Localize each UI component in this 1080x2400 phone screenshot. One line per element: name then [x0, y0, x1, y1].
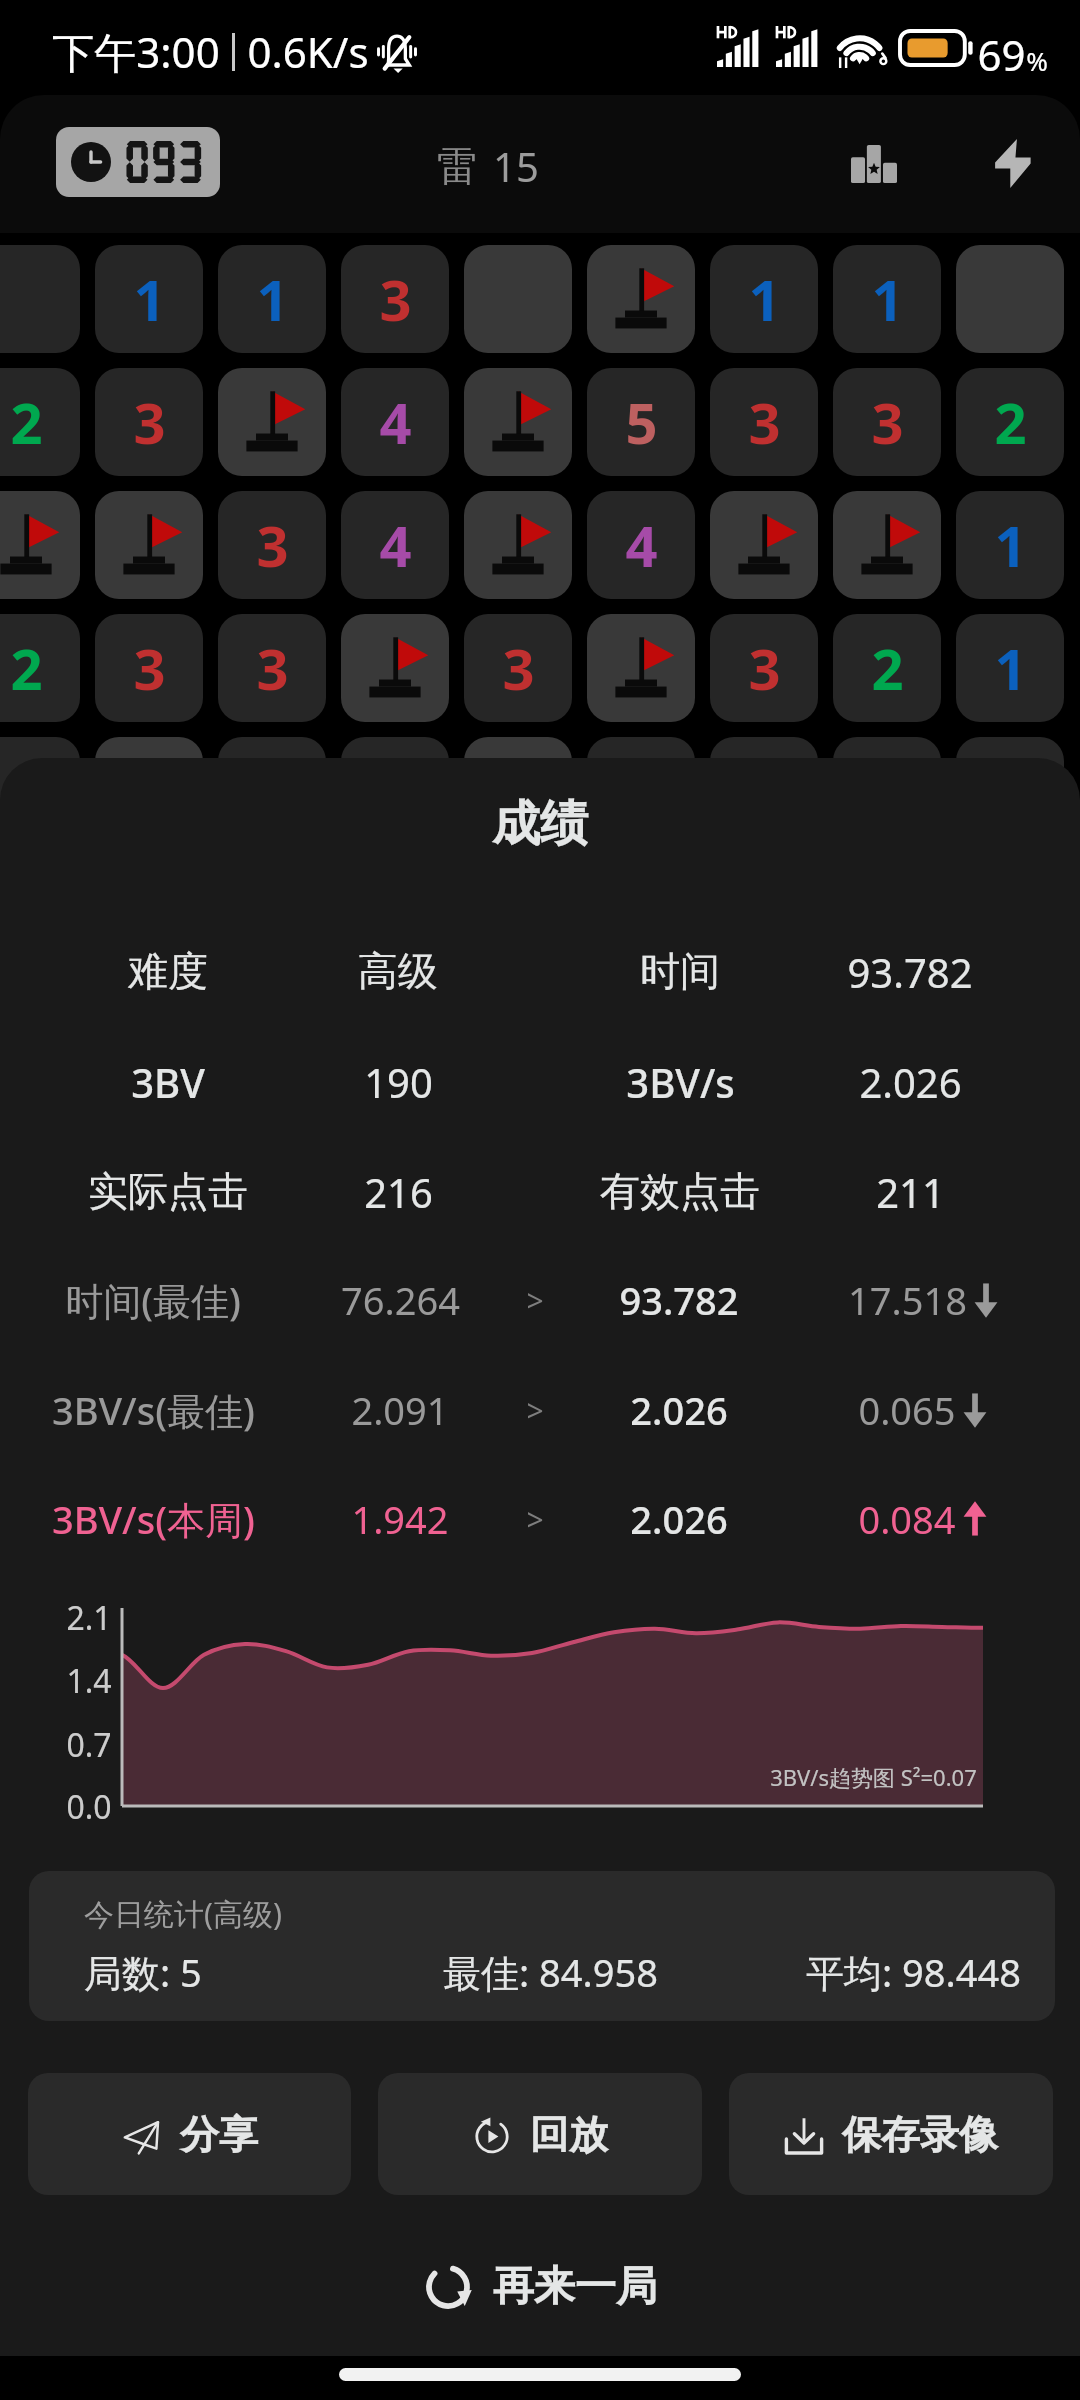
- staticText: 3: [133, 630, 166, 706]
- button[interactable]: Cell: [464, 491, 572, 599]
- staticText: 3: [748, 384, 781, 460]
- button[interactable]: 再来一局: [393, 2247, 687, 2327]
- button[interactable]: Cell: [464, 614, 572, 722]
- staticText: >: [526, 1499, 544, 1540]
- staticText: 5: [625, 384, 658, 460]
- staticText: 0.084: [858, 1493, 956, 1545]
- staticText: 下午3:00: [52, 23, 220, 80]
- button[interactable]: Flash: [966, 115, 1058, 211]
- button[interactable]: Cell: [218, 491, 326, 599]
- button[interactable]: Cell: [710, 614, 818, 722]
- button[interactable]: Cell: [95, 368, 203, 476]
- staticText: 0.7: [66, 1723, 112, 1767]
- button[interactable]: 今日统计(高级): [29, 1871, 1055, 2021]
- staticText: 3: [256, 507, 289, 583]
- staticText: 2: [10, 630, 43, 706]
- staticText: 1: [748, 261, 781, 337]
- button[interactable]: Cell: [956, 614, 1064, 722]
- button[interactable]: Cell: [464, 245, 572, 353]
- button[interactable]: 回放: [378, 2073, 702, 2195]
- button[interactable]: Cell: [0, 245, 80, 353]
- button[interactable]: 保存录像: [729, 2073, 1053, 2195]
- button[interactable]: Cell: [95, 614, 203, 722]
- button[interactable]: Cell: [587, 737, 695, 845]
- staticText: 实际点击: [88, 1166, 248, 1216]
- staticText: 难度: [128, 946, 208, 996]
- button[interactable]: Cell: [0, 368, 80, 476]
- staticText: 成绩: [492, 794, 588, 854]
- staticText: 雷: [437, 141, 477, 191]
- button[interactable]: Cell: [710, 491, 818, 599]
- button[interactable]: Cell: [710, 245, 818, 353]
- staticText: 时间(最佳): [65, 1274, 241, 1326]
- staticText: 93.782: [847, 945, 973, 997]
- button[interactable]: Cell: [833, 491, 941, 599]
- button[interactable]: Cell: [95, 737, 203, 845]
- button[interactable]: Cell: [587, 368, 695, 476]
- button[interactable]: Cell: [833, 245, 941, 353]
- button[interactable]: Timer: [56, 127, 220, 197]
- button[interactable]: Cell: [218, 737, 326, 845]
- staticText: %: [1026, 43, 1048, 78]
- staticText: 高级: [358, 946, 438, 996]
- button[interactable]: Cell: [833, 614, 941, 722]
- button[interactable]: Cell: [341, 491, 449, 599]
- button[interactable]: Cell: [956, 491, 1064, 599]
- button[interactable]: Cell: [464, 368, 572, 476]
- staticText: 有效点击: [600, 1166, 760, 1216]
- staticText: 时间: [640, 946, 720, 996]
- staticText: 4: [625, 507, 658, 583]
- button[interactable]: 分享: [28, 2073, 351, 2195]
- staticText: 3: [133, 384, 166, 460]
- button[interactable]: Cell: [218, 368, 326, 476]
- button[interactable]: Cell: [587, 245, 695, 353]
- staticText: 3BV: [131, 1055, 205, 1107]
- staticText: 2: [10, 384, 43, 460]
- button[interactable]: Cell: [833, 737, 941, 845]
- button[interactable]: Cell: [587, 614, 695, 722]
- button[interactable]: Cell: [956, 737, 1064, 845]
- staticText: 1.4: [66, 1659, 112, 1703]
- button[interactable]: Cell: [956, 245, 1064, 353]
- button[interactable]: Cell: [341, 614, 449, 722]
- button[interactable]: Cell: [341, 368, 449, 476]
- staticText: 3: [379, 261, 412, 337]
- button[interactable]: Cell: [710, 737, 818, 845]
- staticText: 平均: 98.448: [806, 1946, 1021, 1998]
- staticText: 2.026: [630, 1493, 728, 1545]
- button[interactable]: Cell: [833, 368, 941, 476]
- button[interactable]: Cell: [218, 245, 326, 353]
- staticText: 3: [871, 384, 904, 460]
- button[interactable]: Cell: [0, 614, 80, 722]
- button[interactable]: Cell: [587, 491, 695, 599]
- button[interactable]: Cell: [95, 491, 203, 599]
- staticText: 93.782: [619, 1274, 739, 1326]
- staticText: 3: [502, 630, 535, 706]
- button[interactable]: Cell: [218, 614, 326, 722]
- staticText: 4: [379, 507, 412, 583]
- staticText: 今日统计(高级): [84, 1893, 282, 1934]
- staticText: 3BV/s(最佳): [52, 1384, 255, 1436]
- staticText: 1: [256, 261, 289, 337]
- button[interactable]: Cell: [956, 368, 1064, 476]
- button[interactable]: Cell: [341, 737, 449, 845]
- staticText: 15: [493, 139, 539, 193]
- staticText: 分享: [180, 2110, 258, 2159]
- button[interactable]: Cell: [0, 491, 80, 599]
- button[interactable]: Statistics: [828, 119, 920, 209]
- staticText: 2.026: [859, 1055, 962, 1107]
- button[interactable]: Cell: [95, 245, 203, 353]
- staticText: 1: [994, 630, 1027, 706]
- button[interactable]: Cell: [710, 368, 818, 476]
- button[interactable]: Cell: [464, 737, 572, 845]
- staticText: >: [526, 1390, 544, 1431]
- staticText: 69: [977, 26, 1026, 83]
- staticText: 0.065: [858, 1384, 956, 1436]
- staticText: 3: [256, 630, 289, 706]
- staticText: 局数: 5: [84, 1946, 202, 1998]
- button[interactable]: Cell: [0, 737, 80, 845]
- button[interactable]: Cell: [341, 245, 449, 353]
- staticText: 再来一局: [493, 2261, 657, 2313]
- staticText: 1: [133, 261, 166, 337]
- staticText: 1: [871, 261, 904, 337]
